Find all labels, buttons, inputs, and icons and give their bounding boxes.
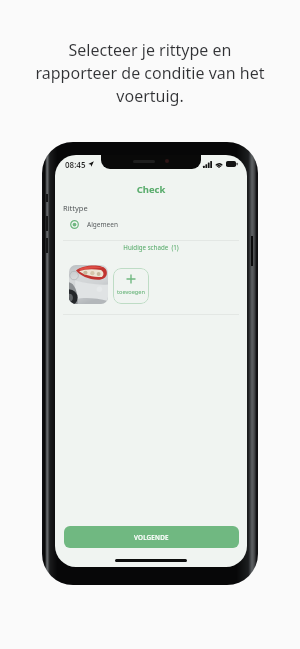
staticText: Huidige schade (1) [55,243,247,251]
button[interactable]: toevoegen [113,268,149,304]
button[interactable]: Algemeen [55,217,247,231]
staticText: Check [55,183,247,196]
staticText: Rittype [63,203,88,213]
button[interactable]: Schade foto [69,265,108,304]
staticText: 08:45 [65,159,86,170]
staticText: Selecteer je rittype en rapporteer de co… [29,39,271,107]
staticText: Algemeen [87,220,118,229]
button[interactable]: VOLGENDE [64,526,239,548]
staticText: toevoegen [117,288,145,296]
staticText: VOLGENDE [134,533,169,542]
